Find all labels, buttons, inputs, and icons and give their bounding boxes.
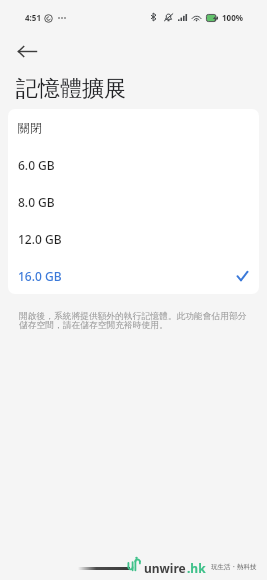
staticText: 儲存空間，請在儲存空閒充裕時使用。: [19, 320, 168, 331]
staticText: 16.0 GB: [18, 268, 62, 284]
staticText: 記憶體擴展: [16, 75, 126, 103]
staticText: 100%: [222, 12, 243, 23]
staticText: .hk: [187, 560, 206, 576]
staticText: 6.0 GB: [18, 157, 55, 173]
staticText: 12.0 GB: [18, 231, 62, 247]
staticText: 關閉: [18, 120, 42, 135]
button[interactable]: 12.0 GB: [8, 220, 259, 257]
button[interactable]: 關閉: [8, 109, 259, 146]
staticText: unwire: [144, 560, 186, 576]
button[interactable]: 16.0 GB: [8, 257, 259, 294]
staticText: 開啟後，系統將提供額外的執行記憶體。此功能會佔用部分: [19, 311, 247, 322]
staticText: 玩生活・熱科技: [211, 563, 257, 571]
button[interactable]: Back: [10, 34, 44, 68]
button[interactable]: 6.0 GB: [8, 146, 259, 183]
staticText: 8.0 GB: [18, 194, 55, 210]
staticText: 4:51: [25, 12, 41, 23]
button[interactable]: 8.0 GB: [8, 183, 259, 220]
